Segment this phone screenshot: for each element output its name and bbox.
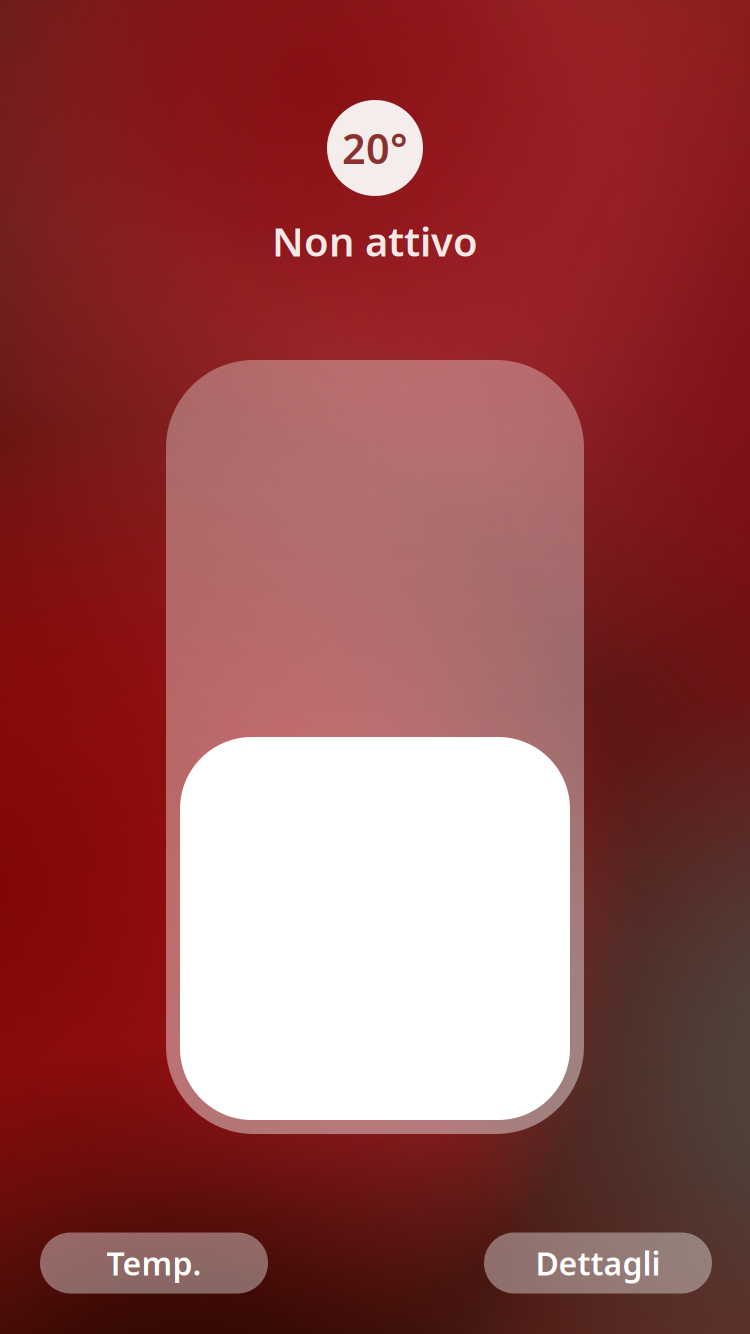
button[interactable]: 20 gradi <box>166 360 584 1134</box>
staticText: Dettagli <box>535 1242 660 1284</box>
staticText: Temp. <box>106 1242 201 1284</box>
button[interactable]: Dettagli <box>484 1232 712 1293</box>
staticText: 20° <box>342 121 408 175</box>
staticText: Non attivo <box>272 214 478 267</box>
button[interactable]: Temp. <box>40 1232 268 1293</box>
button[interactable]: 20° <box>327 100 423 196</box>
